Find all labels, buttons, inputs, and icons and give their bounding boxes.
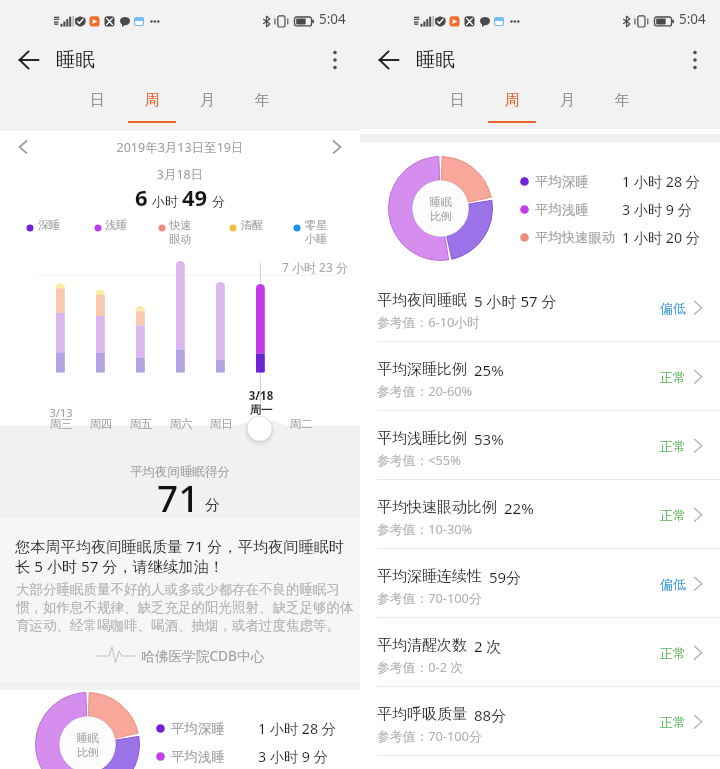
- staticText: 浅睡: [105, 218, 128, 232]
- staticText: 参考值：70-100分: [377, 589, 482, 606]
- staticText: 大部分睡眠质量不好的人或多或少都存在不良的睡眠习惯，如作息不规律、缺乏充足的阳光…: [16, 581, 355, 634]
- staticText: 月: [560, 91, 575, 110]
- staticText: 3月18日: [0, 166, 360, 183]
- staticText: 1 小时 28 分: [622, 172, 700, 191]
- button[interactable]: Back: [9, 40, 49, 80]
- staticText: 分: [212, 193, 225, 209]
- staticText: 平均快速眼动比例: [377, 498, 497, 517]
- staticText: 7 小时 23 分: [282, 259, 348, 275]
- staticText: 平均浅睡比例: [377, 429, 467, 448]
- staticText: 5:04: [319, 10, 346, 28]
- staticText: 哈佛医学院CDB中心: [141, 646, 265, 665]
- button[interactable]: 平均呼吸质量: [360, 687, 720, 756]
- staticText: 1 小时 28 分: [258, 719, 336, 738]
- button[interactable]: Back: [369, 40, 409, 80]
- staticText: 睡眠: [77, 731, 99, 745]
- staticText: 参考值：0-2 次: [377, 658, 464, 675]
- button[interactable]: 平均清醒次数: [360, 618, 720, 687]
- staticText: 周: [505, 91, 520, 110]
- staticText: 3 小时 9 分: [258, 747, 328, 766]
- button[interactable]: 年: [235, 85, 289, 123]
- staticText: 平均浅睡: [535, 201, 622, 218]
- staticText: 参考值：<55%: [377, 451, 461, 468]
- staticText: 49: [182, 182, 208, 212]
- staticText: 平均快速眼动: [535, 229, 622, 246]
- staticText: 88分: [474, 705, 507, 725]
- staticText: 59分: [489, 567, 522, 587]
- button[interactable]: 平均夜间睡眠: [360, 273, 720, 342]
- staticText: 正常: [660, 369, 686, 385]
- staticText: 5:04: [679, 10, 706, 28]
- button[interactable]: 周: [485, 85, 539, 123]
- staticText: 3/13: [37, 405, 85, 420]
- staticText: 日: [450, 91, 465, 110]
- staticText: 快速: [169, 218, 192, 232]
- staticText: 平均呼吸质量: [377, 705, 467, 724]
- staticText: 日: [90, 91, 105, 110]
- staticText: 22%: [504, 498, 534, 518]
- staticText: 平均浅睡: [171, 748, 258, 765]
- staticText: 3 小时 9 分: [622, 200, 692, 219]
- staticText: 正常: [660, 645, 686, 661]
- staticText: 眼动: [169, 232, 192, 246]
- staticText: 参考值：6-10小时: [377, 313, 480, 330]
- button[interactable]: 日: [430, 85, 484, 123]
- button[interactable]: 日: [70, 85, 124, 123]
- staticText: 睡眠: [56, 47, 95, 72]
- staticText: 平均深睡比例: [377, 360, 467, 379]
- button[interactable]: 平均深睡连续性: [360, 549, 720, 618]
- staticText: 正常: [660, 714, 686, 730]
- staticText: 小睡: [305, 232, 328, 246]
- button[interactable]: More options: [675, 40, 715, 80]
- staticText: 周日: [197, 417, 245, 431]
- staticText: 清醒: [241, 218, 264, 232]
- staticText: 53%: [474, 429, 504, 449]
- staticText: 正常: [660, 438, 686, 454]
- staticText: 深睡: [38, 218, 61, 232]
- button[interactable]: Day selector: [242, 411, 278, 447]
- staticText: 偏低: [660, 300, 686, 316]
- staticText: 平均夜间睡眠得分: [0, 464, 360, 480]
- button[interactable]: 周: [125, 85, 179, 123]
- staticText: 3/18: [237, 388, 285, 404]
- staticText: 1 小时 20 分: [622, 228, 700, 247]
- staticText: 6: [135, 182, 148, 212]
- staticText: 睡眠: [430, 195, 452, 209]
- staticText: 平均深睡: [535, 173, 622, 190]
- staticText: 平均清醒次数: [377, 636, 467, 655]
- staticText: 周一: [237, 403, 285, 417]
- staticText: 参考值：20-60%: [377, 382, 473, 399]
- staticText: 比例: [430, 209, 452, 223]
- staticText: 周六: [157, 417, 205, 431]
- staticText: 小时: [152, 193, 178, 209]
- button[interactable]: 平均快速眼动比例: [360, 480, 720, 549]
- staticText: 比例: [77, 745, 99, 759]
- button[interactable]: Next week: [323, 133, 351, 161]
- staticText: 平均夜间睡眠: [377, 291, 467, 310]
- staticText: 5 小时 57 分: [474, 291, 557, 311]
- button[interactable]: 年: [595, 85, 649, 123]
- button[interactable]: 月: [540, 85, 594, 123]
- staticText: 偏低: [660, 576, 686, 592]
- staticText: 2 次: [474, 636, 502, 656]
- staticText: 周五: [117, 417, 165, 431]
- staticText: 月: [200, 91, 215, 110]
- button[interactable]: Previous week: [9, 133, 37, 161]
- staticText: 平均深睡: [171, 720, 258, 737]
- button[interactable]: 平均浅睡比例: [360, 411, 720, 480]
- staticText: 您本周平均夜间睡眠质量 71 分，平均夜间睡眠时长 5 小时 57 分，请继续加…: [15, 536, 347, 577]
- staticText: 周二: [277, 417, 325, 431]
- button[interactable]: 平均深睡比例: [360, 342, 720, 411]
- button[interactable]: 月: [180, 85, 234, 123]
- staticText: 参考值：70-100分: [377, 727, 482, 744]
- staticText: 正常: [660, 507, 686, 523]
- staticText: 周四: [77, 417, 125, 431]
- button[interactable]: More options: [315, 40, 355, 80]
- staticText: 零星: [305, 218, 328, 232]
- staticText: 平均深睡连续性: [377, 567, 482, 586]
- staticText: 周: [145, 91, 160, 110]
- staticText: 25%: [474, 360, 504, 380]
- staticText: 71: [157, 472, 200, 522]
- staticText: 年: [615, 91, 630, 110]
